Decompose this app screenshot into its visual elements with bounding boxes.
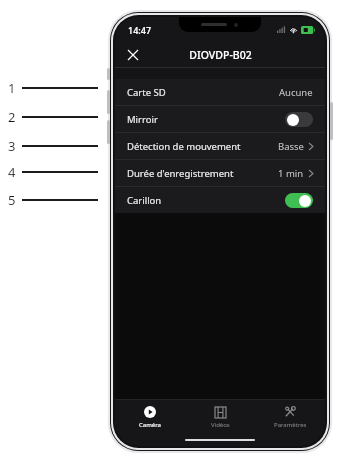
button[interactable]: Activé	[285, 193, 313, 208]
staticText: 1	[8, 79, 16, 97]
staticText: Vidéos	[211, 421, 230, 429]
staticText: Caméra	[139, 421, 161, 429]
staticText: Carillon	[127, 194, 285, 207]
staticText: Durée d'enregistrement	[127, 167, 278, 180]
staticText: 1 min	[278, 167, 304, 180]
button[interactable]: Détection de mouvement	[115, 133, 325, 159]
button[interactable]: Caméra	[115, 400, 185, 434]
staticText: Paramètres	[274, 421, 307, 429]
button[interactable]: Carte SD	[115, 79, 325, 105]
staticText: 4	[8, 163, 16, 181]
button[interactable]: Carillon	[115, 187, 325, 213]
staticText: 2	[8, 108, 16, 126]
button[interactable]: Durée d'enregistrement	[115, 160, 325, 186]
button[interactable]: Mirroir	[115, 106, 325, 132]
staticText: Mirroir	[127, 113, 285, 126]
staticText: 5	[8, 191, 16, 209]
staticText: Carte SD	[127, 86, 279, 99]
button[interactable]: Fermer	[121, 43, 145, 67]
staticText: Détection de mouvement	[127, 140, 278, 153]
staticText: 14:47	[128, 24, 152, 36]
staticText: Basse	[278, 140, 304, 153]
staticText: DIOVDP-B02	[189, 48, 252, 62]
staticText: Aucune	[279, 86, 313, 99]
button[interactable]: Désactivé	[285, 112, 313, 127]
staticText: 3	[8, 137, 16, 155]
button[interactable]: Paramètres	[255, 400, 325, 434]
button[interactable]: Vidéos	[185, 400, 255, 434]
